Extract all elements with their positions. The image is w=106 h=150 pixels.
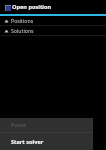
button[interactable]: Start solver [0, 133, 93, 150]
staticText: Start solver [11, 138, 44, 146]
button[interactable]: Solutions [0, 26, 106, 35]
staticText: Solutions [11, 27, 34, 34]
button[interactable]: App icon [0, 0, 106, 14]
staticText: Open position [12, 3, 52, 11]
staticText: Positions [11, 17, 34, 24]
button[interactable]: Positions [0, 16, 106, 25]
staticText: Paste [11, 121, 27, 129]
button[interactable]: Paste [0, 118, 93, 132]
